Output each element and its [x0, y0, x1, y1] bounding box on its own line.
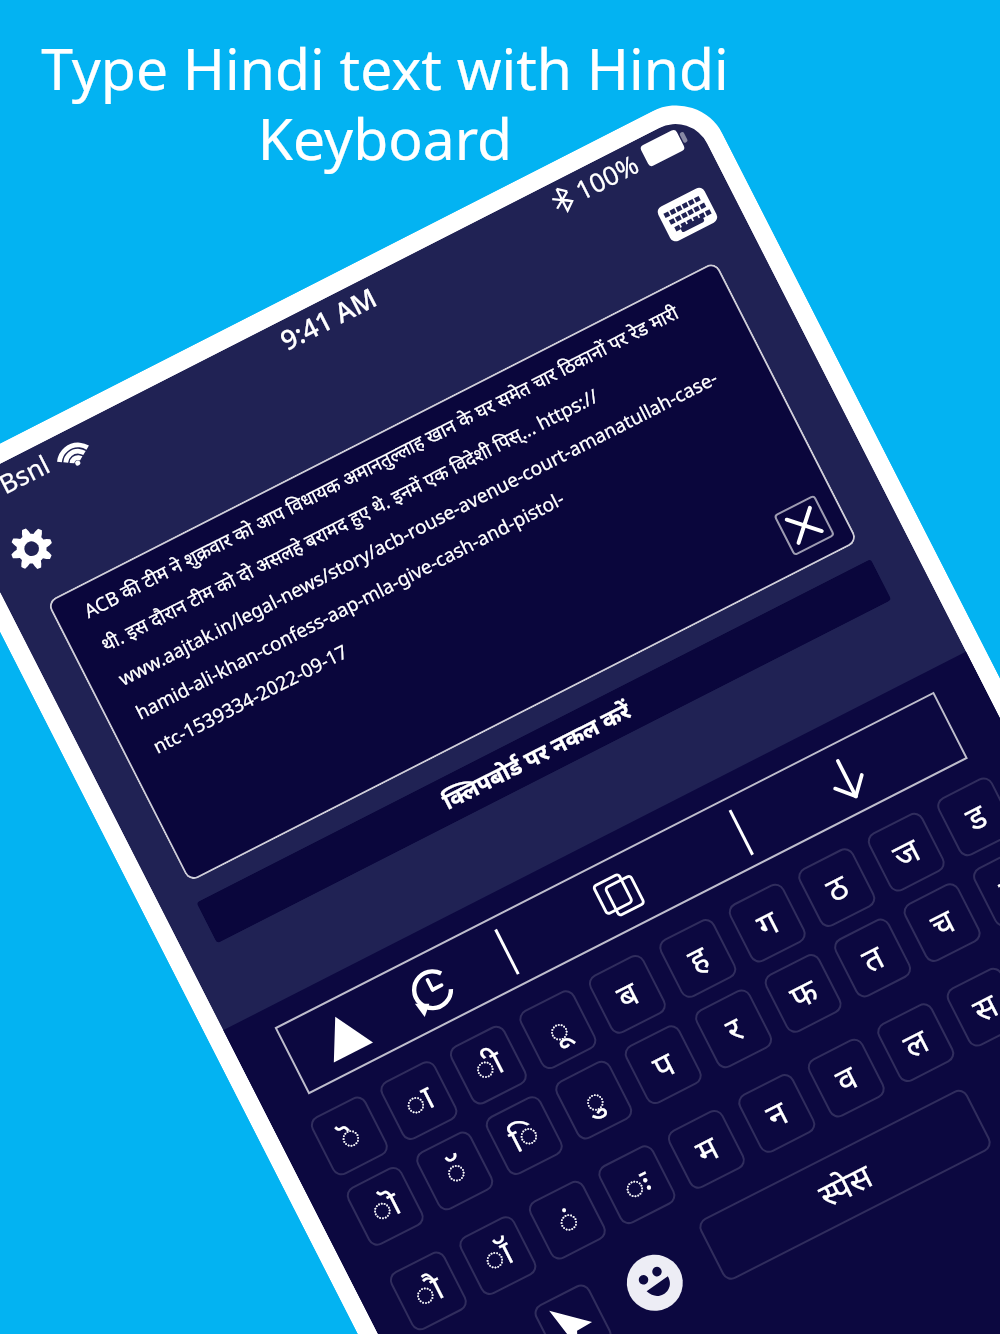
button[interactable]: ल — [874, 1000, 958, 1085]
staticText: र — [718, 1005, 750, 1052]
staticText: ॉ — [475, 1229, 521, 1282]
staticText: न — [758, 1089, 795, 1138]
button[interactable]: Settings — [0, 511, 69, 586]
staticText: च — [922, 898, 962, 947]
button[interactable]: म — [664, 1106, 748, 1192]
button[interactable]: ू — [516, 987, 600, 1072]
button[interactable]: ड — [934, 774, 1000, 860]
button[interactable]: Shift — [289, 981, 399, 1087]
staticText: स — [965, 982, 1000, 1032]
staticText: स्पेस — [811, 1153, 879, 1217]
button[interactable]: ु — [552, 1057, 636, 1143]
button[interactable]: Emoji — [612, 1240, 696, 1325]
staticText: Bsnl — [0, 446, 56, 501]
button[interactable]: Cursor — [531, 1281, 615, 1334]
button[interactable]: स — [970, 844, 1000, 930]
staticText: ACB की टीम ने शुक्रवार को आप विधायक अमान… — [79, 297, 756, 758]
staticText: ॅ — [436, 1146, 474, 1195]
staticText: ौ — [405, 1264, 451, 1318]
button[interactable]: Hide keyboard — [791, 725, 902, 831]
button[interactable]: स्पेस — [696, 1086, 994, 1283]
staticText: ू — [539, 1005, 577, 1054]
button[interactable]: ब — [585, 951, 669, 1037]
button[interactable]: Copy — [563, 841, 674, 947]
button[interactable]: स — [943, 964, 1000, 1050]
button[interactable]: ॊ — [343, 1163, 427, 1249]
button[interactable]: ं — [525, 1177, 609, 1263]
staticText: म — [688, 1124, 726, 1174]
staticText: ज — [885, 826, 928, 878]
button[interactable]: ठ — [795, 845, 879, 930]
button[interactable]: ॆ — [307, 1093, 391, 1179]
button[interactable]: ग — [725, 880, 809, 966]
button[interactable]: ि — [482, 1093, 566, 1178]
button[interactable]: ी — [446, 1022, 530, 1108]
staticText: ल — [895, 1017, 936, 1068]
button[interactable]: History — [377, 936, 488, 1042]
button[interactable]: च — [900, 880, 984, 965]
button[interactable]: ा — [377, 1058, 461, 1143]
button[interactable] — [196, 559, 892, 944]
staticText: ी — [465, 1038, 511, 1092]
button[interactable]: प — [621, 1022, 705, 1107]
button[interactable]: Switch keyboard — [647, 174, 728, 255]
staticText: क्लिपबोर्ड पर नकल करें — [436, 694, 636, 816]
button[interactable]: त — [831, 915, 915, 1001]
button[interactable]: ॅ — [413, 1128, 497, 1214]
staticText: ह — [680, 934, 716, 982]
staticText: Type Hindi text with Hindi Keyboard — [0, 29, 770, 177]
staticText: व — [828, 1054, 865, 1102]
button[interactable]: ACB की टीम ने शुक्रवार को आप विधायक अमान… — [46, 261, 858, 882]
staticText: ग — [749, 899, 786, 947]
button[interactable]: व — [804, 1035, 888, 1121]
button[interactable]: ह — [656, 916, 740, 1001]
staticText: प — [644, 1040, 682, 1089]
staticText: 9:41 AM — [274, 278, 383, 358]
button[interactable]: न — [735, 1071, 819, 1156]
staticText: ठ — [818, 863, 856, 912]
button[interactable]: ज — [864, 809, 948, 895]
staticText: फ — [782, 967, 825, 1019]
staticText: ि — [501, 1109, 547, 1162]
button[interactable]: फ — [761, 951, 845, 1036]
staticText: त — [854, 934, 891, 982]
staticText: ॊ — [362, 1180, 408, 1233]
button[interactable]: Clear clipboard — [773, 494, 835, 556]
staticText: ड — [958, 792, 994, 841]
staticText: ु — [575, 1075, 613, 1124]
staticText: ः — [615, 1159, 659, 1211]
staticText: ॆ — [331, 1111, 369, 1160]
staticText: ा — [396, 1074, 442, 1127]
button[interactable]: र — [692, 986, 776, 1072]
staticText: ं — [549, 1195, 587, 1244]
staticText: 100% — [569, 146, 645, 207]
staticText: ब — [609, 970, 646, 1019]
button[interactable]: ॉ — [456, 1213, 540, 1298]
button[interactable]: ौ — [386, 1248, 470, 1334]
staticText: स — [991, 862, 1000, 912]
button[interactable]: ः — [595, 1142, 679, 1227]
